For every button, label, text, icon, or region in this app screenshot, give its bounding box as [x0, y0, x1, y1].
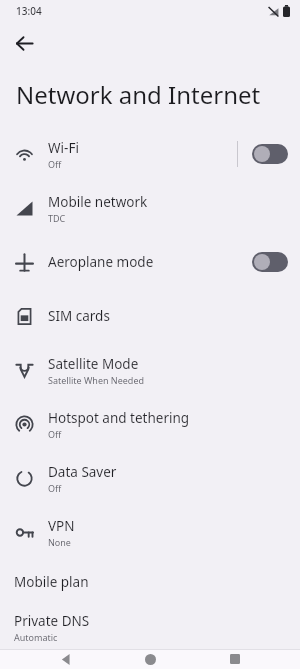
button[interactable]: Wi-Fi: [0, 127, 300, 181]
staticText: Hotspot and tethering: [48, 409, 190, 427]
button[interactable]: Mobile network: [0, 181, 300, 235]
button[interactable]: Data Saver: [0, 451, 300, 505]
button[interactable]: Back: [6, 25, 42, 61]
staticText: Private DNS: [14, 612, 90, 630]
staticText: Satellite Mode: [48, 355, 139, 373]
staticText: Off: [48, 428, 62, 440]
button[interactable]: Back: [47, 649, 85, 669]
button[interactable]: Home: [131, 649, 169, 669]
staticText: VPN: [48, 517, 75, 535]
button[interactable]: Toggle: [252, 144, 288, 164]
staticText: Network and Internet: [16, 78, 284, 111]
button[interactable]: Recents: [216, 649, 254, 669]
staticText: Mobile network: [48, 193, 148, 211]
button[interactable]: VPN: [0, 505, 300, 559]
button[interactable]: Mobile plan: [0, 559, 300, 605]
staticText: Mobile plan: [14, 573, 89, 591]
button[interactable]: Aeroplane mode: [0, 235, 300, 289]
staticText: Wi-Fi: [48, 139, 79, 157]
staticText: Satellite When Needed: [48, 374, 144, 386]
staticText: None: [48, 536, 71, 548]
staticText: TDC: [48, 212, 66, 224]
button[interactable]: SIM cards: [0, 289, 300, 343]
button[interactable]: Satellite Mode: [0, 343, 300, 397]
staticText: Data Saver: [48, 463, 117, 481]
staticText: Off: [48, 158, 62, 170]
button[interactable]: Private DNS: [0, 605, 300, 649]
staticText: 13:04: [16, 4, 42, 18]
staticText: Off: [48, 482, 62, 494]
button[interactable]: Toggle: [252, 252, 288, 272]
staticText: SIM cards: [48, 307, 110, 325]
staticText: Aeroplane mode: [48, 253, 154, 271]
staticText: Automatic: [14, 631, 58, 643]
button[interactable]: Hotspot and tethering: [0, 397, 300, 451]
